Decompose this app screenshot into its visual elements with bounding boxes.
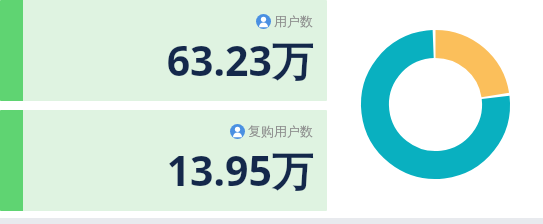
staticText: 用户数 bbox=[274, 13, 313, 29]
staticText: 复购用户数 bbox=[248, 123, 313, 139]
button[interactable]: 用户数 bbox=[0, 0, 327, 101]
button[interactable]: 复购用户数 bbox=[0, 110, 327, 211]
staticText: 63.23万 bbox=[166, 32, 313, 88]
button[interactable]: User ratio donut chart bbox=[327, 0, 543, 211]
staticText: 13.95万 bbox=[166, 142, 313, 198]
